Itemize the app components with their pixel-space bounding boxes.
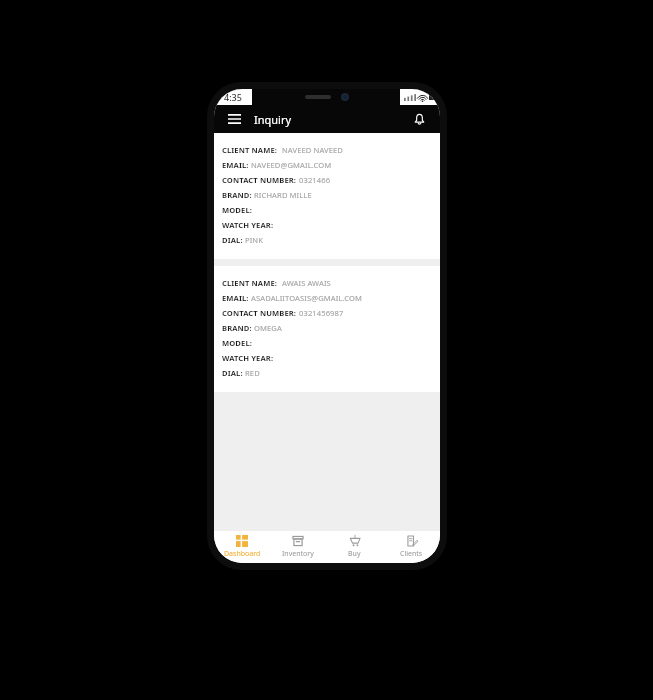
staticText: CONTACT NUMBER: (222, 175, 297, 185)
staticText: DIAL: (222, 368, 243, 378)
staticText: 0321466 (299, 175, 331, 185)
staticText: CLIENT NAME: (222, 278, 278, 288)
staticText: Buy (348, 549, 361, 559)
staticText: RED (245, 368, 260, 378)
staticText: EMAIL: (222, 293, 249, 303)
button[interactable]: Buy (326, 531, 383, 563)
staticText: MODEL: (222, 338, 252, 348)
staticText: MODEL: (222, 205, 252, 215)
staticText: 0321456987 (299, 308, 344, 318)
button[interactable]: CLIENT NAME: (214, 133, 440, 259)
button[interactable]: Notifications (409, 109, 429, 129)
staticText: Clients (400, 549, 423, 559)
staticText: EMAIL: (222, 160, 249, 170)
button[interactable]: Menu (225, 110, 243, 128)
staticText: PINK (245, 235, 264, 245)
staticText: Inventory (282, 549, 314, 559)
button[interactable]: Dashboard (214, 531, 270, 563)
staticText: CLIENT NAME: (222, 145, 278, 155)
staticText: NAVEED NAVEED (282, 145, 344, 155)
staticText: DIAL: (222, 235, 243, 245)
staticText: 4:35 (224, 91, 242, 103)
staticText: OMEGA (254, 323, 282, 333)
staticText: WATCH YEAR: (222, 220, 274, 230)
button[interactable]: Clients (383, 531, 440, 563)
staticText: BRAND: (222, 190, 252, 200)
staticText: WATCH YEAR: (222, 353, 274, 363)
staticText: ASADALIITOASIS@GMAIL.COM (251, 293, 363, 303)
button[interactable]: CLIENT NAME: (214, 266, 440, 392)
staticText: AWAIS AWAIS (282, 278, 331, 288)
staticText: NAVEED@GMAIL.COM (251, 160, 332, 170)
button[interactable]: Inventory (270, 531, 326, 563)
staticText: BRAND: (222, 323, 252, 333)
staticText: Dashboard (224, 549, 261, 559)
staticText: Inquiry (254, 112, 292, 127)
staticText: CONTACT NUMBER: (222, 308, 297, 318)
staticText: RICHARD MILLE (254, 190, 312, 200)
